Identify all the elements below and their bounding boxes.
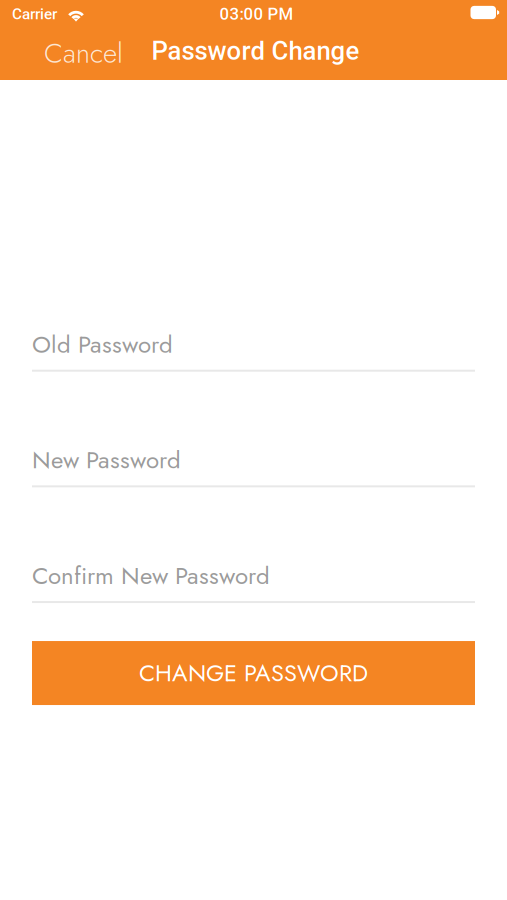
staticText: New Password xyxy=(32,443,181,477)
staticText: Password Change xyxy=(151,36,359,66)
button[interactable]: Cancel xyxy=(33,28,134,80)
button[interactable]: CHANGE PASSWORD xyxy=(32,641,475,705)
staticText: CHANGE PASSWORD xyxy=(139,656,368,690)
staticText: Carrier xyxy=(12,5,57,23)
staticText: Confirm New Password xyxy=(32,558,270,593)
staticText: Cancel xyxy=(44,33,123,73)
staticText: 03:00 PM xyxy=(219,4,293,24)
staticText: Old Password xyxy=(32,327,173,362)
